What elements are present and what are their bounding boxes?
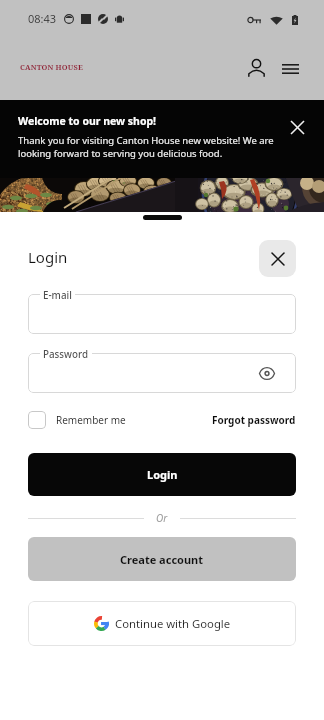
button[interactable]: Menu [277,56,303,82]
staticText: Login [28,247,68,267]
button[interactable]: Close [259,240,296,277]
button[interactable]: Show password [257,364,276,383]
staticText: Welcome to our new shop! [18,114,157,128]
button[interactable]: Account [243,55,269,81]
staticText: Create account [120,552,204,567]
button[interactable]: Create account [28,537,296,581]
staticText: Password [43,348,89,361]
staticText: 08:43 [28,11,57,26]
button[interactable]: Continue with Google [28,601,296,646]
staticText: Continue with Google [115,616,231,631]
staticText: CANTON HOUSE [20,62,83,72]
button[interactable]: Login [28,453,296,496]
button[interactable]: Forgot password [212,413,296,427]
button[interactable] [28,294,296,334]
staticText: Forgot password [212,413,296,427]
staticText: Login [147,467,178,482]
button[interactable]: Dismiss banner [286,116,308,138]
staticText: E-mail [43,289,72,302]
staticText: Remember me [56,413,126,427]
button[interactable]: Remember me [28,411,126,429]
staticText: Thank you for visiting Canton House new … [18,134,274,160]
button[interactable] [28,353,296,393]
staticText: Or [156,511,168,525]
